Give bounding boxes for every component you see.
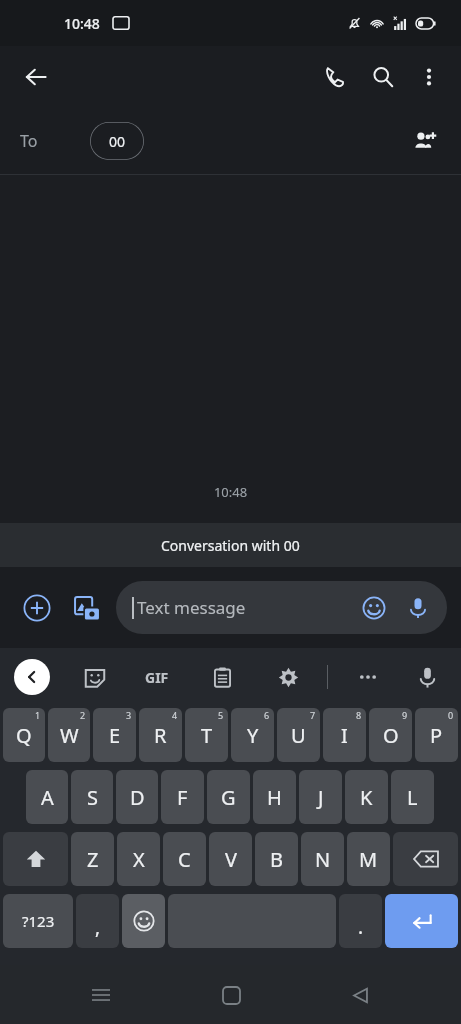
staticText: M	[359, 846, 378, 873]
button[interactable]: C	[163, 832, 206, 886]
button[interactable]: 00	[90, 122, 144, 160]
staticText: Q	[16, 722, 32, 749]
button[interactable]: Recents	[73, 967, 129, 1023]
button[interactable]: M	[347, 832, 390, 886]
staticText: ?123	[22, 911, 55, 931]
button[interactable]: V	[209, 832, 252, 886]
button[interactable]: Enter	[385, 894, 458, 948]
staticText: Y	[247, 722, 259, 749]
button[interactable]: B	[255, 832, 298, 886]
staticText: K	[360, 784, 373, 811]
staticText: ,	[95, 914, 101, 940]
staticText: Conversation with 00	[161, 536, 300, 555]
staticText: To	[20, 130, 38, 152]
button[interactable]: Q	[3, 708, 45, 762]
button[interactable]: R	[139, 708, 182, 762]
staticText: H	[267, 784, 282, 811]
staticText: 10:48	[64, 14, 100, 33]
button[interactable]: Text message	[116, 581, 447, 634]
button[interactable]: ,	[76, 894, 119, 948]
button[interactable]: More	[348, 657, 388, 697]
button[interactable]: H	[253, 770, 296, 824]
staticText: .	[358, 914, 364, 940]
button[interactable]: D	[116, 770, 158, 824]
staticText: G	[221, 784, 236, 811]
button[interactable]: Shift	[3, 832, 68, 886]
button[interactable]: K	[345, 770, 388, 824]
staticText: N	[315, 846, 331, 873]
button[interactable]: Close toolbar	[14, 659, 50, 695]
staticText: J	[318, 784, 324, 811]
staticText: A	[41, 784, 54, 811]
staticText: F	[177, 784, 188, 811]
button[interactable]: Voice typing	[407, 657, 447, 697]
staticText: E	[109, 722, 121, 749]
button[interactable]: T	[185, 708, 228, 762]
staticText: W	[60, 722, 79, 749]
button[interactable]: GIF	[135, 655, 179, 699]
staticText: P	[430, 722, 443, 749]
button[interactable]: S	[71, 770, 113, 824]
button[interactable]: N	[301, 832, 344, 886]
staticText: O	[383, 722, 399, 749]
staticText: V	[225, 846, 237, 873]
button[interactable]: ?123	[3, 894, 73, 948]
staticText: T	[201, 722, 213, 749]
button[interactable]: O	[369, 708, 412, 762]
staticText: 7	[310, 709, 316, 721]
staticText: 9	[402, 709, 408, 721]
staticText: B	[270, 846, 283, 873]
button[interactable]: F	[161, 770, 204, 824]
button[interactable]: G	[207, 770, 250, 824]
button[interactable]: U	[277, 708, 320, 762]
staticText: 5	[218, 709, 224, 721]
button[interactable]: Backspace	[393, 832, 458, 886]
staticText: 1	[35, 709, 41, 721]
button[interactable]: L	[391, 770, 434, 824]
staticText: R	[154, 722, 167, 749]
staticText: X	[133, 846, 145, 873]
staticText: C	[178, 846, 191, 873]
staticText: 00	[109, 132, 126, 151]
staticText: S	[87, 784, 98, 811]
button[interactable]: Y	[231, 708, 274, 762]
staticText: 8	[356, 709, 362, 721]
button[interactable]: Gallery	[64, 585, 110, 631]
button[interactable]: W	[48, 708, 90, 762]
button[interactable]: Clipboard	[202, 657, 242, 697]
button[interactable]: Call	[311, 53, 359, 101]
button[interactable]: P	[415, 708, 458, 762]
button[interactable]: Add people	[401, 117, 449, 165]
button[interactable]: Emoji keyboard	[122, 894, 165, 948]
button[interactable]: E	[93, 708, 136, 762]
staticText: 6	[264, 709, 270, 721]
button[interactable]: Home	[203, 967, 259, 1023]
staticText: L	[407, 784, 418, 811]
staticText: D	[130, 784, 145, 811]
button[interactable]: Attach	[14, 585, 60, 631]
button[interactable]: .	[339, 894, 382, 948]
button[interactable]: A	[26, 770, 68, 824]
button[interactable]: Z	[71, 832, 114, 886]
staticText: 0	[448, 709, 454, 721]
staticText: Z	[87, 846, 99, 873]
staticText: U	[291, 722, 306, 749]
button[interactable]: J	[299, 770, 342, 824]
button[interactable]: Back	[12, 53, 60, 101]
button[interactable]: Emoji	[359, 593, 389, 623]
button[interactable]: I	[323, 708, 366, 762]
button[interactable]: Voice input	[403, 593, 433, 623]
button[interactable]: Stickers	[75, 657, 115, 697]
button[interactable]: Settings	[268, 657, 308, 697]
staticText: I	[341, 722, 348, 749]
staticText: Text message	[137, 596, 359, 619]
staticText: 10:48	[0, 483, 461, 501]
button[interactable]: More options	[407, 55, 451, 99]
button[interactable]: X	[117, 832, 160, 886]
staticText: GIF	[145, 668, 169, 687]
staticText: 3	[126, 709, 132, 721]
button[interactable]: Back	[332, 967, 388, 1023]
button[interactable]: Search	[359, 53, 407, 101]
staticText: 4	[172, 709, 178, 721]
